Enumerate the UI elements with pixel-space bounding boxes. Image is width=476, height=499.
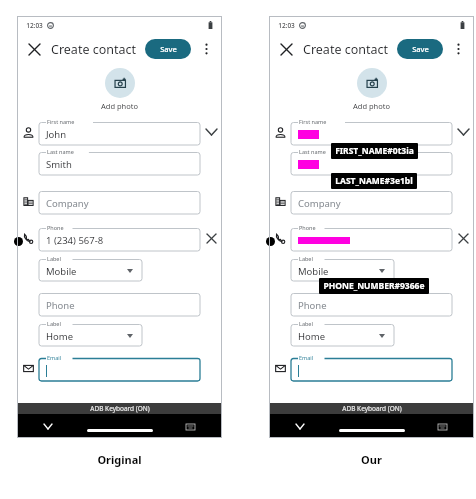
button[interactable]: Company: [39, 188, 200, 214]
button[interactable]: Clear phone number: [453, 228, 473, 248]
button[interactable]: Expand name fields: [453, 122, 473, 142]
button[interactable]: Home: [87, 429, 153, 432]
staticText: Phone: [47, 224, 64, 231]
staticText: Label: [299, 320, 313, 327]
staticText: FIRST_NAME#0t3ia: [335, 145, 414, 157]
button[interactable]: Phone: [291, 225, 452, 251]
button[interactable]: Last name: [291, 149, 452, 175]
staticText: Label: [47, 255, 61, 262]
staticText: ADB Keyboard (ON): [90, 404, 150, 413]
staticText: 1 (234) 567-8: [46, 234, 104, 247]
staticText: Add photo: [101, 101, 138, 111]
staticText: John: [46, 128, 67, 141]
button[interactable]: Phone: [39, 225, 200, 251]
button[interactable]: Company: [291, 188, 452, 214]
button[interactable]: Email: [291, 355, 452, 381]
staticText: Save: [412, 44, 429, 54]
staticText: 12:03: [26, 21, 43, 30]
button[interactable]: Save: [145, 39, 191, 59]
button[interactable]: More options: [196, 39, 216, 59]
staticText: Company: [46, 197, 89, 210]
button[interactable]: Email: [39, 355, 200, 381]
button[interactable]: First name: [39, 119, 200, 145]
staticText: Smith: [46, 158, 72, 171]
button[interactable]: Phone: [291, 290, 452, 316]
staticText: Add photo: [353, 101, 390, 111]
staticText: Phone: [46, 299, 75, 312]
button[interactable]: Home: [339, 429, 405, 432]
button[interactable]: Close: [22, 37, 46, 61]
staticText: Home: [46, 330, 74, 343]
staticText: Company: [298, 197, 341, 210]
button[interactable]: Switch keyboard: [183, 420, 197, 434]
staticText: Create contact: [51, 41, 137, 58]
staticText: 12:03: [278, 21, 295, 30]
button[interactable]: Add photo: [357, 68, 387, 98]
button[interactable]: Add photo: [105, 68, 135, 98]
button[interactable]: Label: [291, 256, 394, 281]
staticText: Our: [361, 452, 382, 467]
staticText: Last name: [47, 148, 74, 155]
staticText: Original: [97, 452, 142, 467]
staticText: Save: [160, 44, 177, 54]
staticText: Last name: [299, 148, 326, 155]
button[interactable]: Phone: [39, 290, 200, 316]
staticText: LAST_NAME#3e1bl: [335, 175, 413, 187]
staticText: PHONE_NUMBER#9366e: [323, 280, 425, 292]
staticText: Phone: [299, 224, 316, 231]
staticText: ADB Keyboard (ON): [342, 404, 402, 413]
staticText: First name: [47, 118, 75, 125]
button[interactable]: Label: [39, 256, 142, 281]
button[interactable]: Switch keyboard: [435, 420, 449, 434]
staticText: Create contact: [303, 41, 389, 58]
staticText: Mobile: [298, 265, 329, 278]
button[interactable]: Last name: [39, 149, 200, 175]
staticText: First name: [299, 118, 327, 125]
staticText: Label: [47, 320, 61, 327]
staticText: Home: [298, 330, 326, 343]
button[interactable]: Save: [397, 39, 443, 59]
button[interactable]: Label: [39, 321, 142, 346]
button[interactable]: First name: [291, 119, 452, 145]
staticText: Mobile: [46, 265, 77, 278]
button[interactable]: Hide keyboard: [293, 419, 307, 433]
staticText: Email: [47, 354, 62, 361]
button[interactable]: Hide keyboard: [41, 419, 55, 433]
staticText: Email: [299, 354, 314, 361]
button[interactable]: Expand name fields: [201, 122, 221, 142]
button[interactable]: More options: [448, 39, 468, 59]
button[interactable]: Clear phone number: [201, 228, 221, 248]
staticText: Phone: [298, 299, 327, 312]
button[interactable]: Label: [291, 321, 394, 346]
staticText: Label: [299, 255, 313, 262]
button[interactable]: Close: [274, 37, 298, 61]
